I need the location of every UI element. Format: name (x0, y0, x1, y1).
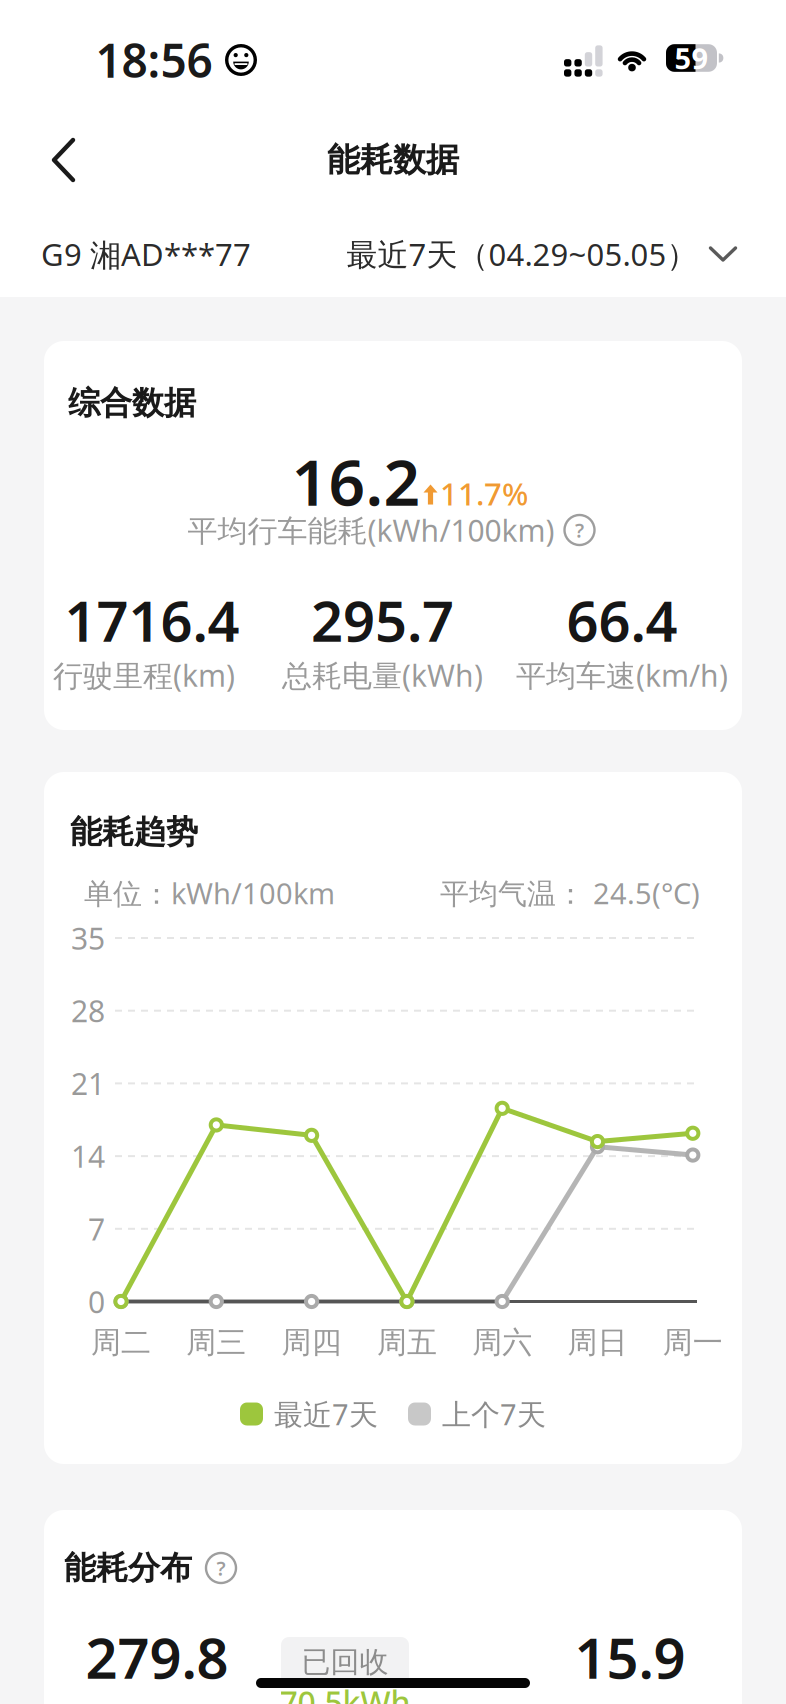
button[interactable]: G9 湘AD***77 (41, 232, 251, 276)
staticText: ? (575, 517, 584, 543)
staticText: 行驶里程(km) (53, 655, 235, 695)
staticText: 能耗数据 (327, 140, 459, 180)
button[interactable]: Help (564, 515, 594, 545)
staticText: 已回收 (301, 1644, 388, 1680)
staticText: ? (216, 1555, 225, 1581)
staticText: 平均行车能耗(kWh/100km) (187, 510, 554, 550)
staticText: 16.2 (291, 438, 420, 523)
button[interactable]: Back (0, 121, 79, 199)
staticText: 66.4 (566, 583, 677, 657)
staticText: 综合数据 (68, 383, 196, 423)
staticText: 11.7% (440, 473, 528, 514)
staticText: 周六 (472, 1324, 532, 1361)
button[interactable]: Help (206, 1553, 236, 1583)
staticText: 总耗电量(kWh) (282, 655, 483, 695)
button[interactable]: 最近7天 (240, 1395, 378, 1433)
staticText: 295.7 (311, 583, 454, 657)
staticText: 21 (71, 1063, 105, 1103)
staticText: 单位：kWh/100km (84, 874, 335, 912)
staticText: G9 湘AD***77 (41, 233, 251, 275)
staticText: 最近7天（04.29~05.05） (346, 233, 697, 275)
staticText: 7 (88, 1209, 105, 1249)
staticText: 15.9 (574, 1620, 685, 1694)
staticText: 1716.4 (64, 583, 239, 657)
staticText: 0 (88, 1282, 105, 1321)
staticText: 28 (71, 991, 105, 1031)
staticText: 70.5kWh (279, 1681, 410, 1704)
button[interactable]: 上个7天 (408, 1395, 546, 1433)
staticText: 能耗分布 (64, 1548, 192, 1588)
staticText: 35 (71, 918, 105, 958)
staticText: 周三 (186, 1324, 246, 1361)
staticText: 上个7天 (442, 1395, 546, 1433)
staticText: 平均气温： 24.5(°C) (440, 874, 700, 912)
staticText: 18:56 (95, 29, 212, 91)
button[interactable]: 最近7天（04.29~05.05） (346, 232, 737, 276)
staticText: 周五 (377, 1324, 437, 1361)
staticText: 周四 (282, 1324, 342, 1361)
staticText: 最近7天 (274, 1395, 378, 1433)
staticText: 周日 (567, 1324, 627, 1361)
staticText: 14 (71, 1136, 105, 1176)
staticText: 平均车速(km/h) (516, 655, 728, 695)
staticText: 能耗趋势 (70, 812, 198, 852)
staticText: 周二 (91, 1324, 151, 1361)
staticText: 周一 (663, 1324, 723, 1361)
staticText: 279.8 (85, 1620, 228, 1694)
staticText: 59 (674, 39, 708, 77)
